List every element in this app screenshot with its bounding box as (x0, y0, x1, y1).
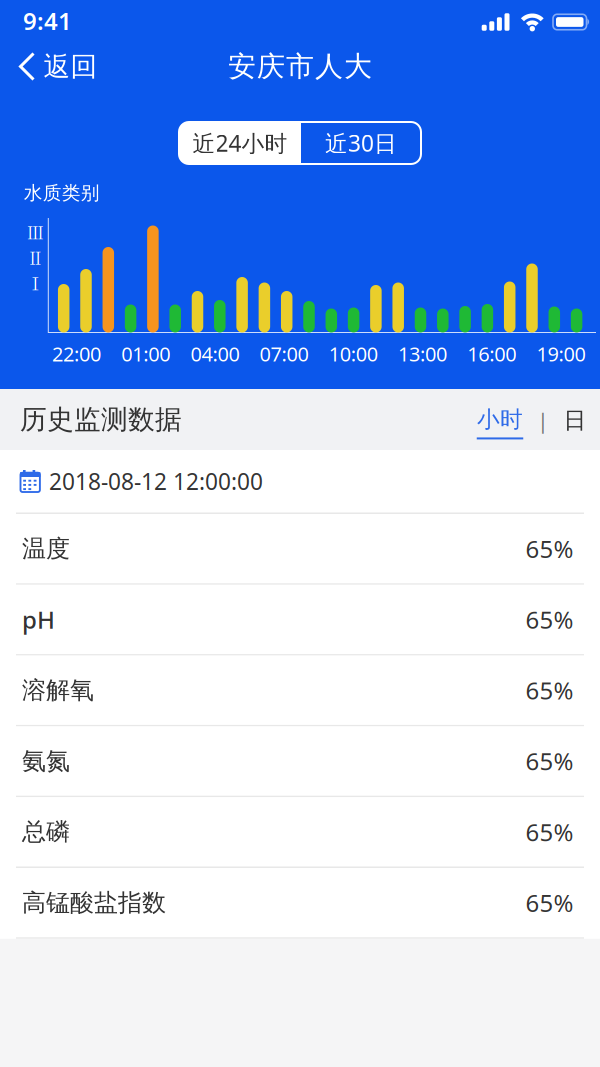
staticText: 01:00 (121, 340, 170, 367)
staticText: 9:41 (23, 5, 72, 37)
staticText: 历史监测数据 (20, 403, 182, 436)
staticText: pH (22, 603, 55, 635)
staticText: 07:00 (260, 340, 309, 367)
staticText: 日 (563, 407, 586, 434)
staticText: 氨氮 (22, 746, 70, 776)
staticText: 65% (525, 603, 573, 635)
button[interactable]: 日 (563, 407, 586, 434)
button[interactable]: 近24小时 (179, 122, 301, 164)
staticText: 22:00 (52, 340, 101, 367)
button[interactable]: 2018-08-12 12:00:00 (0, 450, 600, 514)
staticText: Ⅱ (27, 245, 44, 269)
staticText: 温度 (22, 534, 70, 563)
staticText: 65% (525, 816, 573, 848)
staticText: 04:00 (190, 340, 239, 367)
staticText: 65% (525, 745, 573, 777)
staticText: 溶解氧 (22, 675, 94, 705)
staticText: 2018-08-12 12:00:00 (49, 466, 263, 496)
staticText: 总磷 (22, 817, 70, 847)
staticText: 65% (525, 533, 573, 565)
staticText: 小时 (477, 406, 523, 433)
button[interactable]: 返回 (0, 50, 97, 83)
staticText: Ⅲ (27, 220, 44, 244)
staticText: 返回 (43, 50, 97, 83)
staticText: 安庆市人大 (228, 49, 372, 84)
staticText: 水质类别 (24, 181, 100, 204)
staticText: 10:00 (329, 340, 378, 367)
button[interactable]: 小时 (477, 406, 523, 439)
staticText: 65% (525, 887, 573, 919)
staticText: 近30日 (325, 128, 397, 158)
staticText: | (537, 406, 549, 435)
staticText: 近24小时 (192, 128, 287, 158)
staticText: Ⅰ (27, 271, 44, 295)
staticText: 65% (525, 674, 573, 706)
button[interactable]: 近30日 (301, 122, 421, 164)
staticText: 13:00 (398, 340, 447, 367)
staticText: 高锰酸盐指数 (22, 888, 166, 917)
staticText: 19:00 (536, 340, 585, 367)
staticText: 16:00 (467, 340, 516, 367)
